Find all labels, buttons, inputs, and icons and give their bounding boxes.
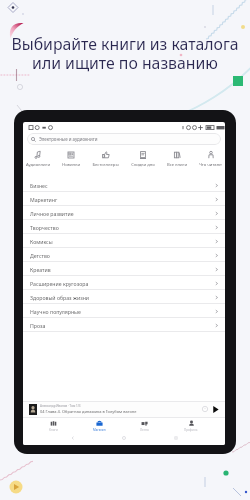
staticText: Книги xyxy=(49,428,58,432)
staticText: Бестселлеры xyxy=(92,162,119,168)
staticText: Креатив xyxy=(30,266,51,273)
staticText: Творчество xyxy=(30,224,59,231)
button[interactable]: Научно популярные xyxy=(23,304,225,318)
staticText: 04 Глава 4. Обратная динамика в Голубом … xyxy=(40,409,137,414)
staticText: Маркетинг xyxy=(30,196,58,203)
staticText: Научно популярные xyxy=(30,308,81,315)
staticText: Профиль xyxy=(184,428,198,432)
button[interactable]: Расширение кругозора xyxy=(23,276,225,290)
staticText: Расширение кругозора xyxy=(30,280,89,287)
staticText: Все книги xyxy=(167,162,187,168)
button[interactable]: Скорость xyxy=(201,405,209,413)
staticText: Александр Иванов · Том 1/3 xyxy=(40,404,81,408)
staticText: Выбирайте книги из каталога или ищите по… xyxy=(0,33,250,74)
button[interactable]: Детство xyxy=(23,248,225,262)
staticText: Бизнес xyxy=(30,182,48,189)
staticText: Электронные и аудиокниги xyxy=(39,136,98,142)
staticText: Личное развитие xyxy=(30,210,74,217)
button[interactable]: Личное развитие xyxy=(23,206,225,220)
staticText: Магазин xyxy=(93,428,106,432)
button[interactable]: Бестселлеры xyxy=(92,150,119,168)
staticText: Детство xyxy=(30,252,50,259)
button[interactable]: Книги xyxy=(44,420,63,432)
button[interactable]: Профиль xyxy=(179,420,203,432)
button[interactable]: Креатив xyxy=(23,262,225,276)
button[interactable]: Творчество xyxy=(23,220,225,234)
staticText: Новинки xyxy=(62,162,80,168)
button[interactable]: Что читают xyxy=(199,150,222,168)
button[interactable]: Комиксы xyxy=(23,234,225,248)
staticText: Лента xyxy=(140,428,149,432)
button[interactable]: Электронные и аудиокниги xyxy=(27,133,221,145)
button[interactable]: Скидки дня xyxy=(131,150,155,168)
button[interactable]: Воспроизвести xyxy=(211,405,220,414)
button[interactable]: Все книги xyxy=(167,150,187,168)
button[interactable]: Новинки xyxy=(62,150,80,168)
staticText: Аудиокниги xyxy=(26,162,50,168)
button[interactable]: Здоровый образ жизни xyxy=(23,290,225,304)
button[interactable]: Магазин xyxy=(88,420,111,432)
button[interactable]: Лента xyxy=(135,420,154,432)
button[interactable]: Аудиокниги xyxy=(26,150,50,168)
button[interactable]: Проза xyxy=(23,318,225,332)
staticText: Что читают xyxy=(199,162,222,168)
button[interactable]: Маркетинг xyxy=(23,192,225,206)
button[interactable]: Бизнес xyxy=(23,178,225,192)
staticText: Проза xyxy=(30,322,46,329)
staticText: Скидки дня xyxy=(131,162,155,168)
staticText: Комиксы xyxy=(30,238,53,245)
staticText: Здоровый образ жизни xyxy=(30,294,90,301)
